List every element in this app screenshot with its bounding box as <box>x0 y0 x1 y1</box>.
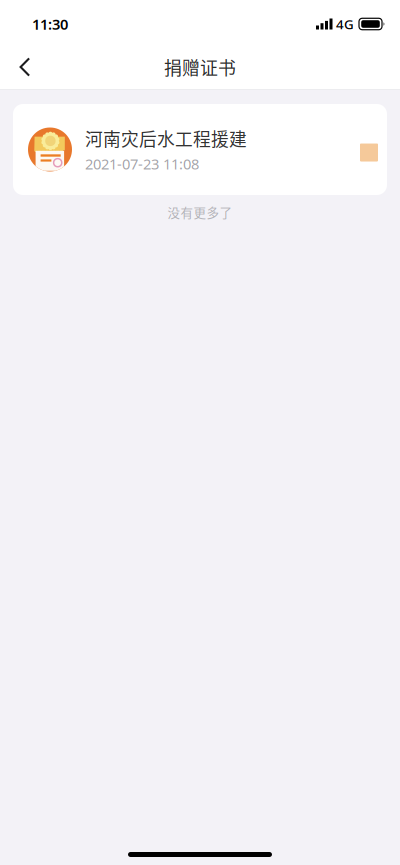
staticText: 2021-07-23 11:08 <box>85 154 199 174</box>
button[interactable]: 河南灾后水工程援建 <box>13 104 387 195</box>
staticText: 没有更多了 <box>167 203 232 221</box>
staticText: 捐赠证书 <box>164 54 236 80</box>
button[interactable]: Back <box>5 44 45 90</box>
staticText: 河南灾后水工程援建 <box>85 125 247 151</box>
staticText: 4G <box>336 15 354 33</box>
staticText: 11:30 <box>32 14 68 34</box>
